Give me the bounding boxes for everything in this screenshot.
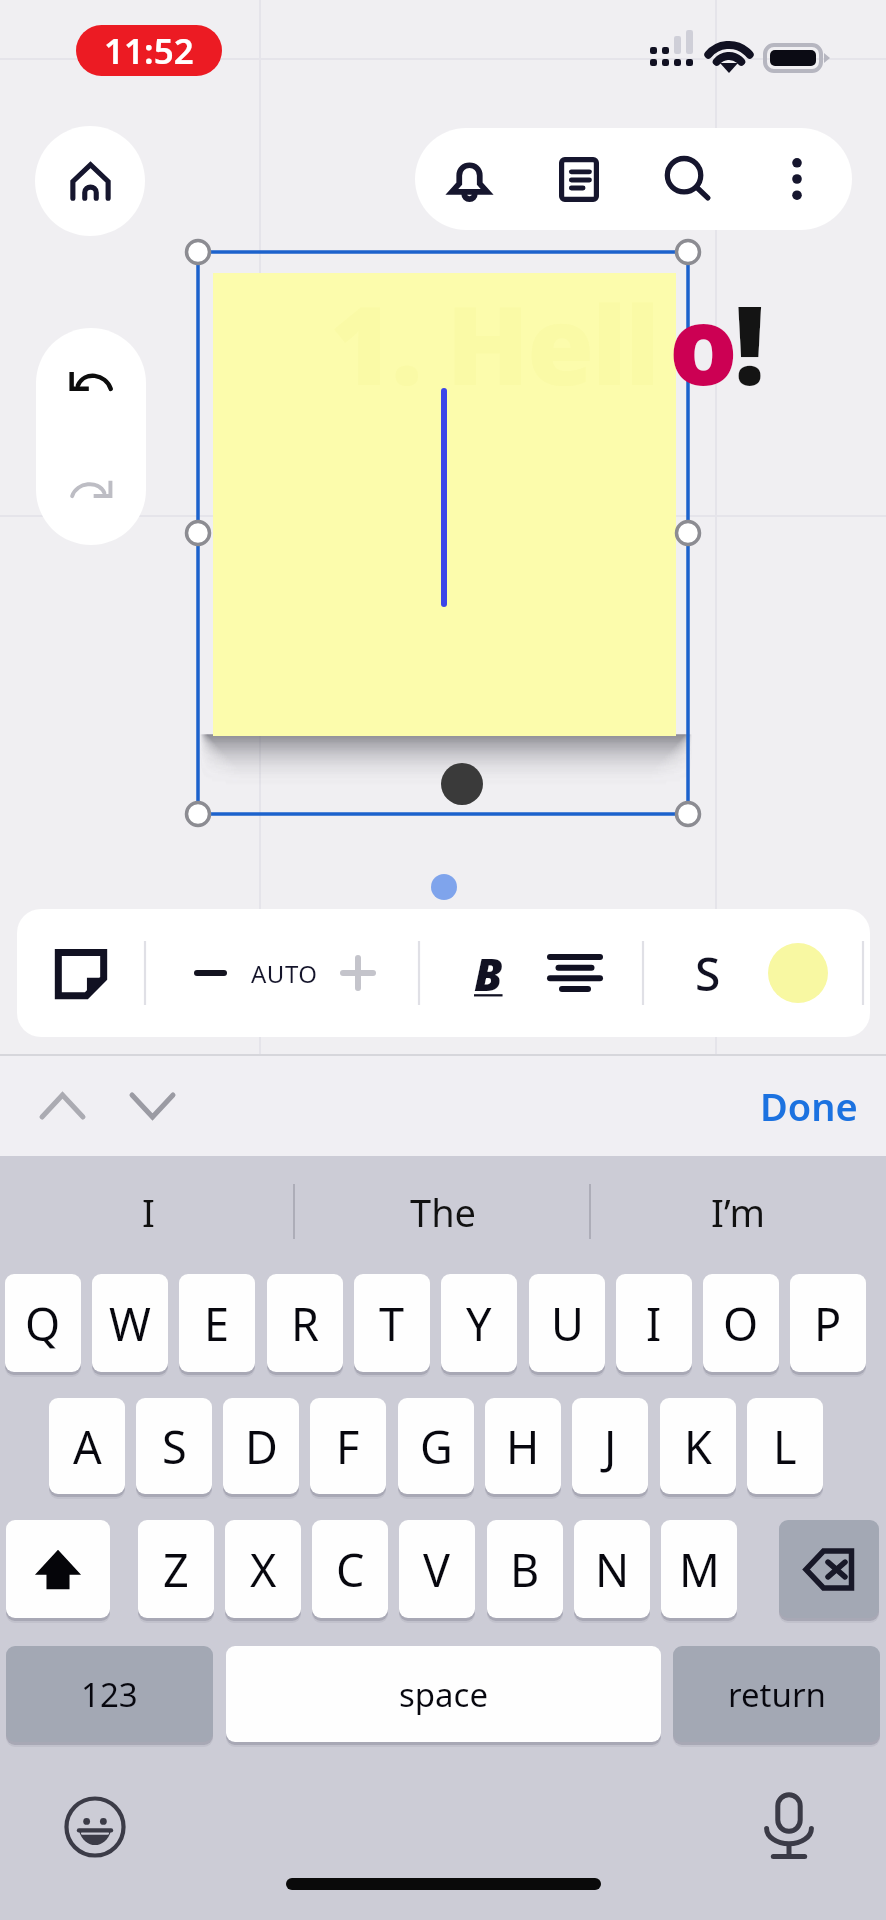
button[interactable]: O [703, 1274, 779, 1372]
button[interactable]: Colour [748, 909, 848, 1037]
staticText: Y [466, 1293, 492, 1354]
button[interactable]: Decrease size [173, 909, 247, 1037]
staticText: M [679, 1539, 720, 1600]
staticText: K [684, 1416, 712, 1477]
staticText: S [162, 1416, 187, 1477]
button[interactable]: B [487, 1520, 563, 1618]
button[interactable]: D [223, 1398, 299, 1494]
staticText: U [551, 1293, 584, 1354]
staticText: I [142, 1186, 155, 1238]
button[interactable]: The [353, 1162, 533, 1262]
staticText: A [73, 1416, 102, 1477]
button[interactable]: K [660, 1398, 736, 1494]
button[interactable]: U [529, 1274, 605, 1372]
button[interactable]: Shift [6, 1520, 110, 1618]
staticText: space [399, 1672, 489, 1717]
button[interactable]: X [225, 1520, 301, 1618]
staticText: B [510, 1539, 540, 1600]
button[interactable]: Notifications [415, 128, 524, 230]
staticText: J [604, 1416, 617, 1477]
button[interactable]: Undo [36, 328, 146, 436]
button[interactable]: I [616, 1274, 692, 1372]
button[interactable]: More options [742, 128, 851, 230]
button[interactable]: C [312, 1520, 388, 1618]
staticText: Z [163, 1539, 189, 1600]
button[interactable]: P [790, 1274, 866, 1372]
staticText: V [423, 1539, 451, 1600]
button[interactable]: Search [633, 128, 742, 230]
staticText: Done [760, 1080, 858, 1132]
button[interactable]: Previous field [22, 1056, 102, 1156]
staticText: I [646, 1293, 662, 1354]
button[interactable]: Auto size [229, 909, 339, 1037]
staticText: I’m [711, 1186, 765, 1238]
button[interactable]: S [136, 1398, 212, 1494]
button[interactable]: H [485, 1398, 561, 1494]
button[interactable]: N [574, 1520, 650, 1618]
button[interactable]: Redo [36, 437, 146, 545]
button[interactable]: Note shape [21, 909, 141, 1037]
staticText: B [474, 943, 503, 1004]
staticText: F [336, 1416, 360, 1477]
staticText: W [109, 1293, 151, 1354]
button[interactable]: J [572, 1398, 648, 1494]
staticText: ! [734, 270, 766, 417]
button[interactable]: Next field [112, 1056, 192, 1156]
button[interactable]: V [399, 1520, 475, 1618]
button[interactable]: Notes [524, 128, 633, 230]
button[interactable]: E [179, 1274, 255, 1372]
button[interactable]: Y [441, 1274, 517, 1372]
button[interactable]: I’m [648, 1162, 828, 1262]
staticText: S [695, 942, 721, 1005]
staticText: The [410, 1186, 477, 1238]
staticText: AUTO [251, 957, 318, 990]
button[interactable]: F [310, 1398, 386, 1494]
staticText: R [291, 1293, 319, 1354]
staticText: 123 [81, 1672, 138, 1717]
staticText: 11:52 [104, 27, 194, 75]
button[interactable]: I [58, 1162, 238, 1262]
staticText: C [336, 1539, 365, 1600]
button[interactable]: M [661, 1520, 737, 1618]
staticText: G [420, 1416, 453, 1477]
staticText: Q [25, 1293, 61, 1354]
staticText: O [723, 1293, 759, 1354]
button[interactable]: Increase size [321, 909, 395, 1037]
staticText: o [669, 270, 738, 417]
staticText: E [204, 1293, 230, 1354]
button[interactable]: Z [138, 1520, 214, 1618]
button[interactable]: return [673, 1646, 880, 1742]
button[interactable]: Emoji keyboard [52, 1784, 138, 1870]
button[interactable]: L [747, 1398, 823, 1494]
staticText: N [595, 1539, 630, 1600]
staticText: T [379, 1293, 405, 1354]
button[interactable]: space [226, 1646, 661, 1742]
staticText: P [814, 1293, 842, 1354]
button[interactable]: Done [749, 1056, 869, 1156]
button[interactable]: W [92, 1274, 168, 1372]
staticText: return [728, 1672, 826, 1717]
button[interactable]: Home [35, 126, 145, 236]
button[interactable]: Backspace [779, 1520, 879, 1618]
staticText: D [245, 1416, 278, 1477]
button[interactable]: 123 [6, 1646, 213, 1742]
staticText: X [250, 1539, 277, 1600]
button[interactable]: Q [5, 1274, 81, 1372]
button[interactable]: A [49, 1398, 125, 1494]
button[interactable]: Alignment [527, 909, 623, 1037]
button[interactable]: R [267, 1274, 343, 1372]
button[interactable]: Dictation [746, 1784, 832, 1870]
button[interactable]: T [354, 1274, 430, 1372]
button[interactable]: Strikethrough [660, 909, 756, 1037]
staticText: H [506, 1416, 540, 1477]
staticText: 1. Hell [330, 270, 658, 417]
staticText: L [773, 1416, 797, 1477]
button[interactable]: Bold [440, 909, 536, 1037]
button[interactable]: G [398, 1398, 474, 1494]
